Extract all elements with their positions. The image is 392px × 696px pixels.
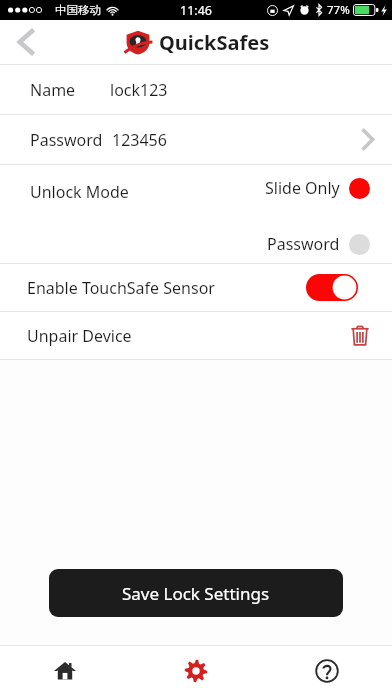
staticText: 123456 [112, 129, 167, 151]
staticText: Enable TouchSafe Sensor [27, 277, 215, 299]
button[interactable]: Help [261, 646, 392, 696]
button[interactable]: Unpair Device [0, 312, 392, 359]
button[interactable]: Name [0, 65, 392, 114]
staticText: Unpair Device [27, 325, 132, 347]
button[interactable]: Save Lock Settings [49, 569, 343, 617]
button[interactable]: Slide Only [265, 177, 370, 199]
button[interactable]: Password [267, 233, 370, 255]
staticText: lock123 [110, 79, 168, 101]
staticText: Name [30, 79, 76, 101]
button[interactable]: Password [0, 115, 392, 164]
other: Delete [351, 325, 369, 346]
staticText: QuickSafes [159, 29, 270, 56]
staticText: 11:46 [180, 2, 212, 19]
staticText: 77% [327, 2, 350, 18]
staticText: Password [267, 233, 340, 255]
staticText: 中国移动 [55, 3, 101, 17]
staticText: Unlock Mode [30, 181, 129, 203]
button[interactable]: Settings [130, 646, 261, 696]
staticText: Password [30, 129, 103, 151]
button[interactable]: Home [0, 646, 130, 696]
button[interactable]: Back [4, 20, 48, 64]
staticText: Slide Only [265, 177, 340, 199]
button[interactable]: Enable TouchSafe Sensor [0, 264, 392, 311]
staticText: Save Lock Settings [122, 582, 270, 605]
